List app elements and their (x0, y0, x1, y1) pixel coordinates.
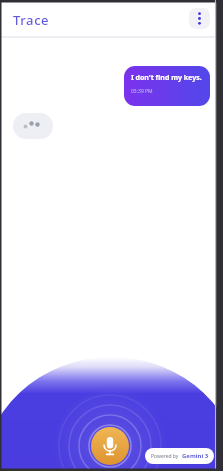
staticText: I don't find my keys. (131, 73, 202, 83)
staticText: Gemini 3 (182, 452, 209, 460)
staticText: Trace (13, 11, 50, 29)
staticText: 05:39 PM (131, 88, 153, 95)
button[interactable] (91, 427, 129, 465)
button[interactable] (189, 8, 210, 29)
button[interactable] (13, 113, 53, 139)
staticText: Powered by (151, 453, 179, 460)
button[interactable]: I don't find my keys. (124, 66, 210, 106)
button[interactable]: Powered by (145, 448, 214, 464)
